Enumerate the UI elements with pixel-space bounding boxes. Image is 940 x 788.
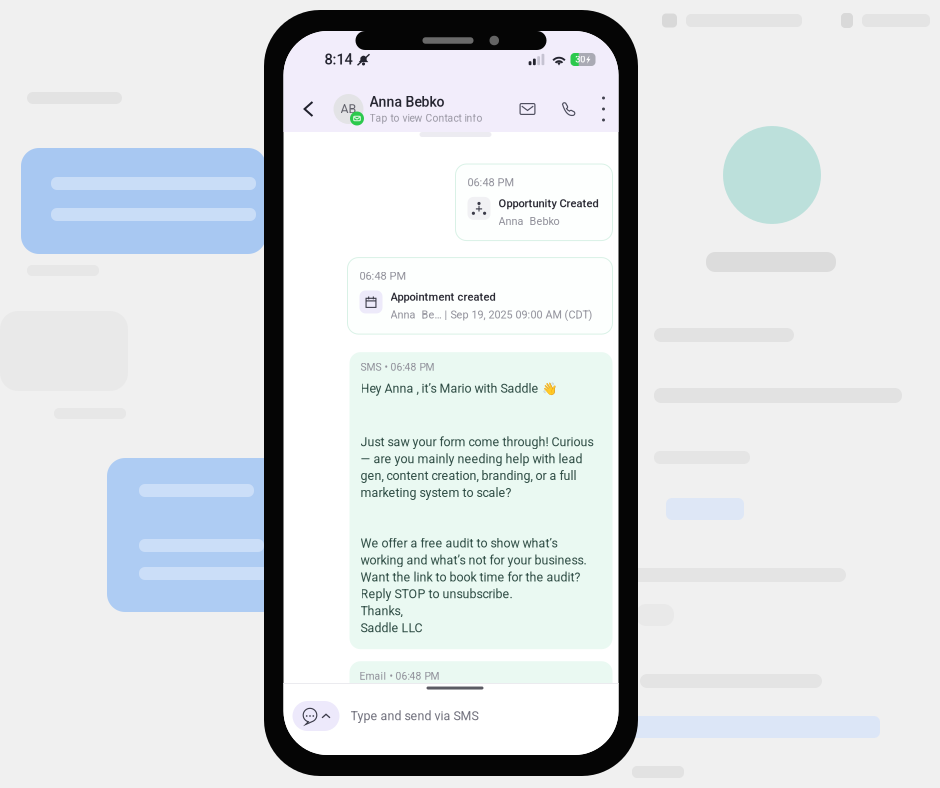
button[interactable]: 06:48 PM: [347, 258, 612, 334]
button[interactable]: Email: [512, 86, 542, 132]
staticText: Just saw your form come through! Curious…: [360, 435, 593, 500]
staticText: 30: [575, 54, 585, 65]
staticText: 06:48 PM: [467, 176, 514, 189]
staticText: Type and send via SMS: [350, 709, 478, 723]
button[interactable]: AB: [333, 86, 482, 132]
button[interactable]: 06:48 PM: [455, 164, 612, 241]
staticText: 06:48 PM: [359, 270, 406, 282]
button[interactable]: Back: [293, 86, 323, 132]
button[interactable]: Call: [554, 86, 582, 132]
staticText: Email • 06:48 PM: [359, 670, 439, 682]
staticText: Anna Bebko: [369, 94, 444, 110]
staticText: Appointment created: [390, 290, 495, 303]
button[interactable]: More options: [592, 86, 614, 132]
button[interactable]: Message channel: [292, 701, 339, 731]
staticText: AB: [340, 102, 356, 116]
staticText: Anna Bebko: [498, 215, 559, 228]
button[interactable]: Type and send via SMS: [350, 695, 550, 737]
staticText: We offer a free audit to show what’s wor…: [360, 536, 586, 635]
staticText: SMS • 06:48 PM: [360, 361, 434, 373]
staticText: Hey Anna , it’s Mario with Saddle 👋: [360, 381, 556, 396]
staticText: Opportunity Created: [498, 197, 598, 210]
staticText: Tap to view Contact info: [369, 112, 482, 124]
staticText: Anna Be… | Sep 19, 2025 09:00 AM (CDT): [390, 308, 592, 321]
staticText: 8:14: [324, 51, 352, 68]
